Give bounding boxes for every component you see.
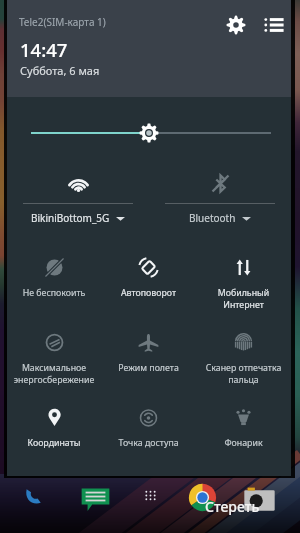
- button[interactable]: Режим полета: [101, 312, 196, 387]
- button[interactable]: Brightness: [7, 97, 291, 157]
- button[interactable]: Chrome: [188, 483, 217, 512]
- button[interactable]: Максимальное энергосбережение: [7, 312, 101, 387]
- button[interactable]: Camera: [243, 483, 276, 516]
- button[interactable]: Settings: [226, 15, 246, 35]
- staticText: Мобильный Интернет: [196, 287, 291, 311]
- staticText: Автоповорот: [101, 287, 196, 299]
- button[interactable]: Messages: [79, 482, 112, 515]
- button[interactable]: Координаты: [7, 387, 101, 462]
- staticText: 14:47: [20, 37, 68, 62]
- button[interactable]: BikiniBottom_5G: [7, 157, 149, 237]
- button[interactable]: Edit quick settings: [264, 15, 284, 35]
- staticText: Tele2(SIM-карта 1): [19, 15, 106, 29]
- button[interactable]: Bluetooth: [149, 157, 291, 237]
- staticText: Стереть: [205, 497, 260, 516]
- button[interactable]: Стереть: [205, 497, 260, 516]
- staticText: Максимальное энергосбережение: [7, 362, 101, 386]
- button[interactable]: Точка доступа: [101, 387, 196, 462]
- staticText: Сканер отпечатка пальца: [196, 362, 291, 386]
- button[interactable]: Сканер отпечатка пальца: [196, 312, 291, 387]
- staticText: Фонарик: [196, 437, 291, 449]
- button[interactable]: All apps: [141, 486, 160, 505]
- staticText: Координаты: [7, 437, 101, 449]
- staticText: Не беспокоить: [7, 287, 101, 299]
- button[interactable]: Не беспокоить: [7, 237, 101, 312]
- button[interactable]: Фонарик: [196, 387, 291, 462]
- staticText: Bluetooth: [189, 211, 236, 225]
- staticText: Режим полета: [101, 362, 196, 374]
- staticText: BikiniBottom_5G: [31, 211, 110, 225]
- staticText: Суббота, 6 мая: [20, 63, 100, 78]
- button[interactable]: Автоповорот: [101, 237, 196, 312]
- button[interactable]: Мобильный Интернет: [196, 237, 291, 312]
- staticText: Точка доступа: [101, 437, 196, 449]
- button[interactable]: Phone: [24, 483, 46, 505]
